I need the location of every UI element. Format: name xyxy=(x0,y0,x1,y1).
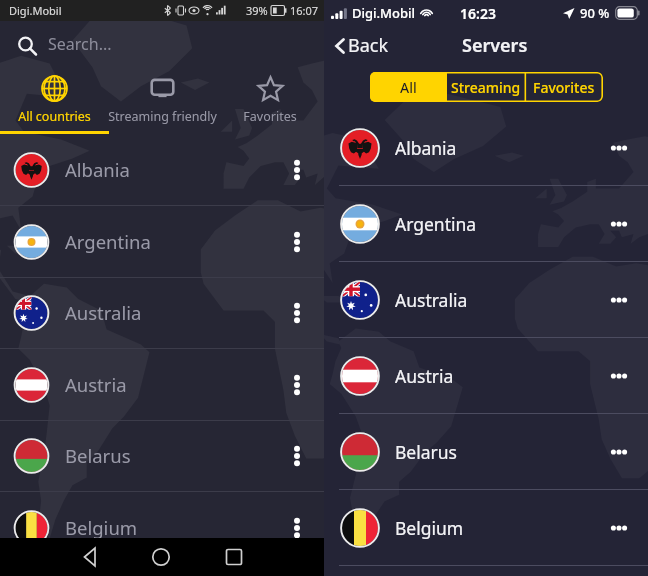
staticText: Australia xyxy=(65,300,142,325)
button[interactable]: All countries xyxy=(0,67,108,133)
staticText: Favorites xyxy=(533,78,595,97)
button[interactable]: More options xyxy=(268,283,324,343)
button[interactable]: Recents xyxy=(210,538,258,576)
staticText: Belarus xyxy=(395,440,458,464)
staticText: Belarus xyxy=(65,443,131,468)
button[interactable]: More options xyxy=(590,346,648,406)
staticText: Favorites xyxy=(243,108,297,125)
button[interactable]: Austria xyxy=(324,338,648,413)
button[interactable]: More options xyxy=(268,140,324,200)
staticText: 90 % xyxy=(580,4,610,22)
staticText: 16:07 xyxy=(290,3,319,18)
button[interactable]: Belarus xyxy=(324,414,648,489)
button[interactable]: Albania xyxy=(324,110,648,185)
staticText: Albania xyxy=(65,157,130,182)
button[interactable]: Albania xyxy=(0,134,324,205)
button[interactable]: Austria xyxy=(0,349,324,420)
button[interactable]: Streaming xyxy=(447,72,525,102)
button[interactable]: Australia xyxy=(0,277,324,348)
staticText: All countries xyxy=(18,108,91,125)
button[interactable]: Back xyxy=(332,33,389,58)
staticText: Search... xyxy=(48,33,112,55)
staticText: Streaming xyxy=(451,78,521,97)
button[interactable]: Australia xyxy=(324,262,648,337)
button[interactable]: Argentina xyxy=(0,206,324,277)
button[interactable]: Search... xyxy=(0,21,324,67)
staticText: Austria xyxy=(65,372,127,397)
button[interactable]: Favorites xyxy=(216,67,324,133)
staticText: 39% xyxy=(246,3,268,18)
staticText: Argentina xyxy=(395,212,477,236)
staticText: Digi.Mobil xyxy=(9,3,62,18)
staticText: Albania xyxy=(395,136,457,160)
button[interactable]: Belarus xyxy=(0,420,324,491)
staticText: 16:23 xyxy=(460,4,496,23)
staticText: Argentina xyxy=(65,229,151,254)
button[interactable]: More options xyxy=(590,118,648,178)
button[interactable]: Belgium xyxy=(324,490,648,565)
button[interactable]: More options xyxy=(590,194,648,254)
button[interactable]: More options xyxy=(268,212,324,272)
staticText: Belgium xyxy=(395,516,464,540)
button[interactable]: More options xyxy=(590,498,648,558)
button[interactable]: All xyxy=(370,72,447,102)
button[interactable]: Home xyxy=(137,538,185,576)
staticText: Back xyxy=(348,33,389,58)
button[interactable]: Belgium xyxy=(0,492,324,538)
button[interactable]: More options xyxy=(268,426,324,486)
button[interactable]: Streaming friendly xyxy=(108,67,216,133)
staticText: Belgium xyxy=(65,515,138,538)
button[interactable]: More options xyxy=(590,422,648,482)
button[interactable]: Argentina xyxy=(324,186,648,261)
button[interactable]: More options xyxy=(268,498,324,538)
staticText: All xyxy=(400,78,417,97)
staticText: Streaming friendly xyxy=(108,108,217,125)
staticText: Digi.Mobil xyxy=(352,4,416,22)
button[interactable]: More options xyxy=(590,270,648,330)
button[interactable]: Favorites xyxy=(525,72,603,102)
staticText: Servers xyxy=(462,33,528,58)
staticText: Australia xyxy=(395,288,468,312)
button[interactable]: More options xyxy=(268,355,324,415)
button[interactable]: Back xyxy=(66,538,114,576)
staticText: Austria xyxy=(395,364,454,388)
